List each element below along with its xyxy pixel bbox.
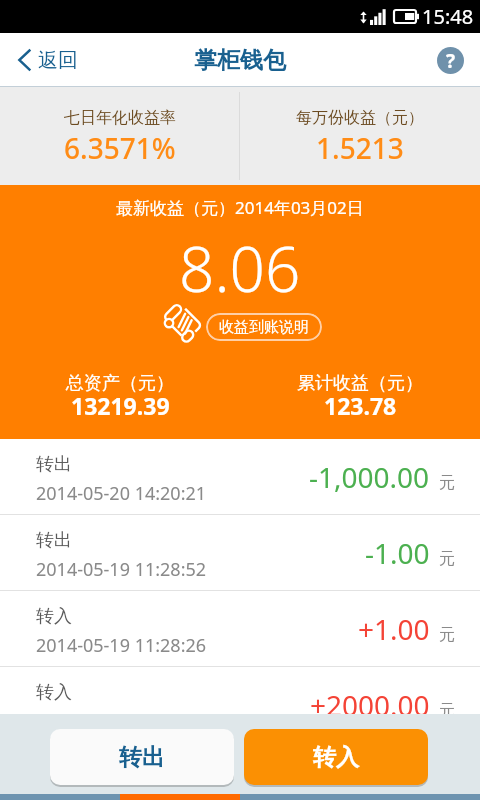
staticText: 收益到账说明 bbox=[219, 318, 309, 337]
button[interactable]: 转出 bbox=[0, 515, 480, 590]
button[interactable]: 累计收益（元） bbox=[240, 372, 480, 426]
staticText: 转出 bbox=[119, 743, 165, 772]
staticText: 8.06 bbox=[179, 226, 301, 310]
staticText: 13219.39 bbox=[71, 390, 170, 421]
staticText: 元 bbox=[439, 625, 455, 645]
button[interactable]: Help bbox=[437, 47, 464, 74]
staticText: 掌柜钱包 bbox=[194, 46, 286, 75]
button[interactable]: 转入 bbox=[0, 591, 480, 666]
button[interactable]: 收益到账说明 bbox=[219, 313, 309, 341]
staticText: 转出 bbox=[36, 529, 72, 552]
staticText: 1.5213 bbox=[316, 129, 404, 167]
staticText: 2014-05-20 14:20:21 bbox=[36, 481, 207, 506]
staticText: 2014-05-19 11:28:52 bbox=[36, 557, 207, 582]
staticText: 返回 bbox=[38, 48, 78, 73]
staticText: +1.00 bbox=[358, 610, 430, 648]
button[interactable]: 转出 bbox=[50, 729, 234, 785]
staticText: 15:48 bbox=[422, 3, 474, 30]
staticText: 七日年化收益率 bbox=[64, 108, 176, 128]
staticText: -1,000.00 bbox=[309, 458, 430, 496]
staticText: 总资产（元） bbox=[66, 372, 174, 395]
staticText: ? bbox=[446, 48, 456, 74]
staticText: 最新收益（元）2014年03月02日 bbox=[116, 196, 364, 219]
staticText: 123.78 bbox=[324, 390, 397, 421]
staticText: 2014-05-19 11:27:44 bbox=[36, 709, 207, 734]
button[interactable]: 转出 bbox=[0, 439, 480, 514]
staticText: 元 bbox=[439, 701, 455, 721]
button[interactable]: 七日年化收益率 bbox=[0, 87, 239, 185]
staticText: 累计收益（元） bbox=[297, 372, 423, 395]
staticText: 每万份收益（元） bbox=[296, 108, 424, 128]
button[interactable]: 返回 bbox=[0, 33, 92, 87]
button[interactable]: 每万份收益（元） bbox=[240, 87, 480, 185]
staticText: 元 bbox=[439, 549, 455, 569]
staticText: +2000.00 bbox=[310, 686, 430, 724]
button[interactable]: 总资产（元） bbox=[0, 372, 240, 426]
staticText: 元 bbox=[439, 473, 455, 493]
staticText: 6.3571% bbox=[64, 129, 176, 167]
button[interactable]: 转入 bbox=[244, 729, 428, 785]
button[interactable]: 转入 bbox=[0, 667, 480, 742]
staticText: 转入 bbox=[36, 681, 72, 704]
staticText: 2014-05-19 11:28:26 bbox=[36, 633, 207, 658]
staticText: 转入 bbox=[36, 605, 72, 628]
staticText: -1.00 bbox=[365, 534, 430, 572]
staticText: 转入 bbox=[313, 743, 359, 772]
staticText: 转出 bbox=[36, 453, 72, 476]
